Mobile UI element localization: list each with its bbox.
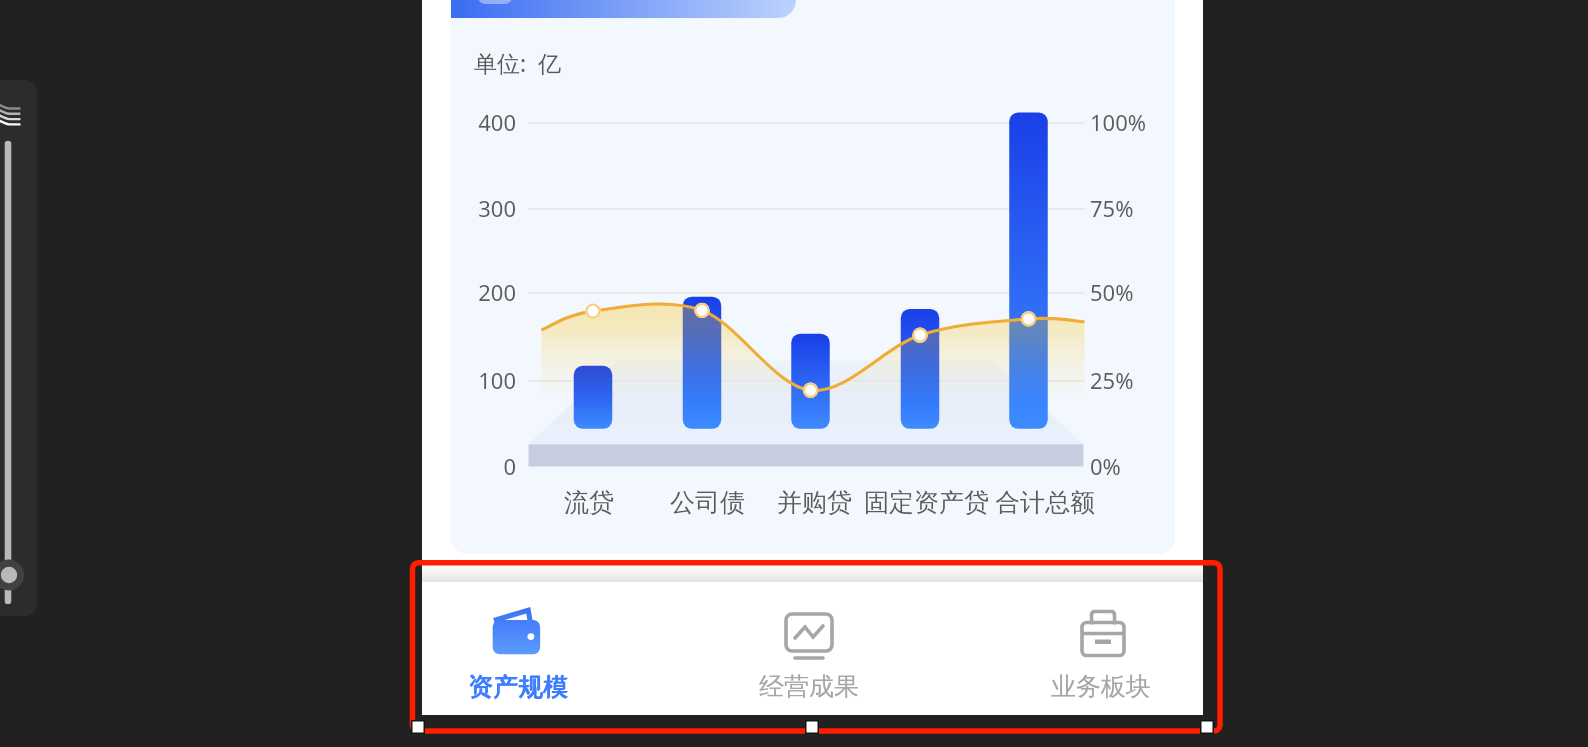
button[interactable]: 经营成果 [737,592,881,710]
staticText: 固定资产贷 [864,487,989,518]
staticText: 公司债 [670,487,745,518]
staticText: 0 [451,451,516,481]
button[interactable]: 业务板块 [1029,592,1173,710]
staticText: 资产规模 [446,672,590,703]
staticText: 400 [451,107,516,137]
staticText: 单位: 亿 [474,47,562,78]
staticText: 200 [451,277,516,307]
staticText: 流贷 [564,487,614,518]
staticText: 资产规模 [446,671,590,702]
staticText: 0% [1090,451,1121,481]
staticText: 100 [451,365,516,395]
staticText: 75% [1090,193,1134,223]
staticText: 资产规模 [447,671,591,702]
staticText: 合计总额 [995,487,1095,518]
staticText: 经营成果 [737,671,881,702]
staticText: 50% [1090,277,1134,307]
staticText: 300 [451,193,516,223]
staticText: 25% [1090,365,1134,395]
staticText: 100% [1090,107,1147,137]
staticText: 业务板块 [1029,671,1173,702]
staticText: 并购贷 [777,487,852,518]
button[interactable]: 资产规模 [446,592,590,710]
